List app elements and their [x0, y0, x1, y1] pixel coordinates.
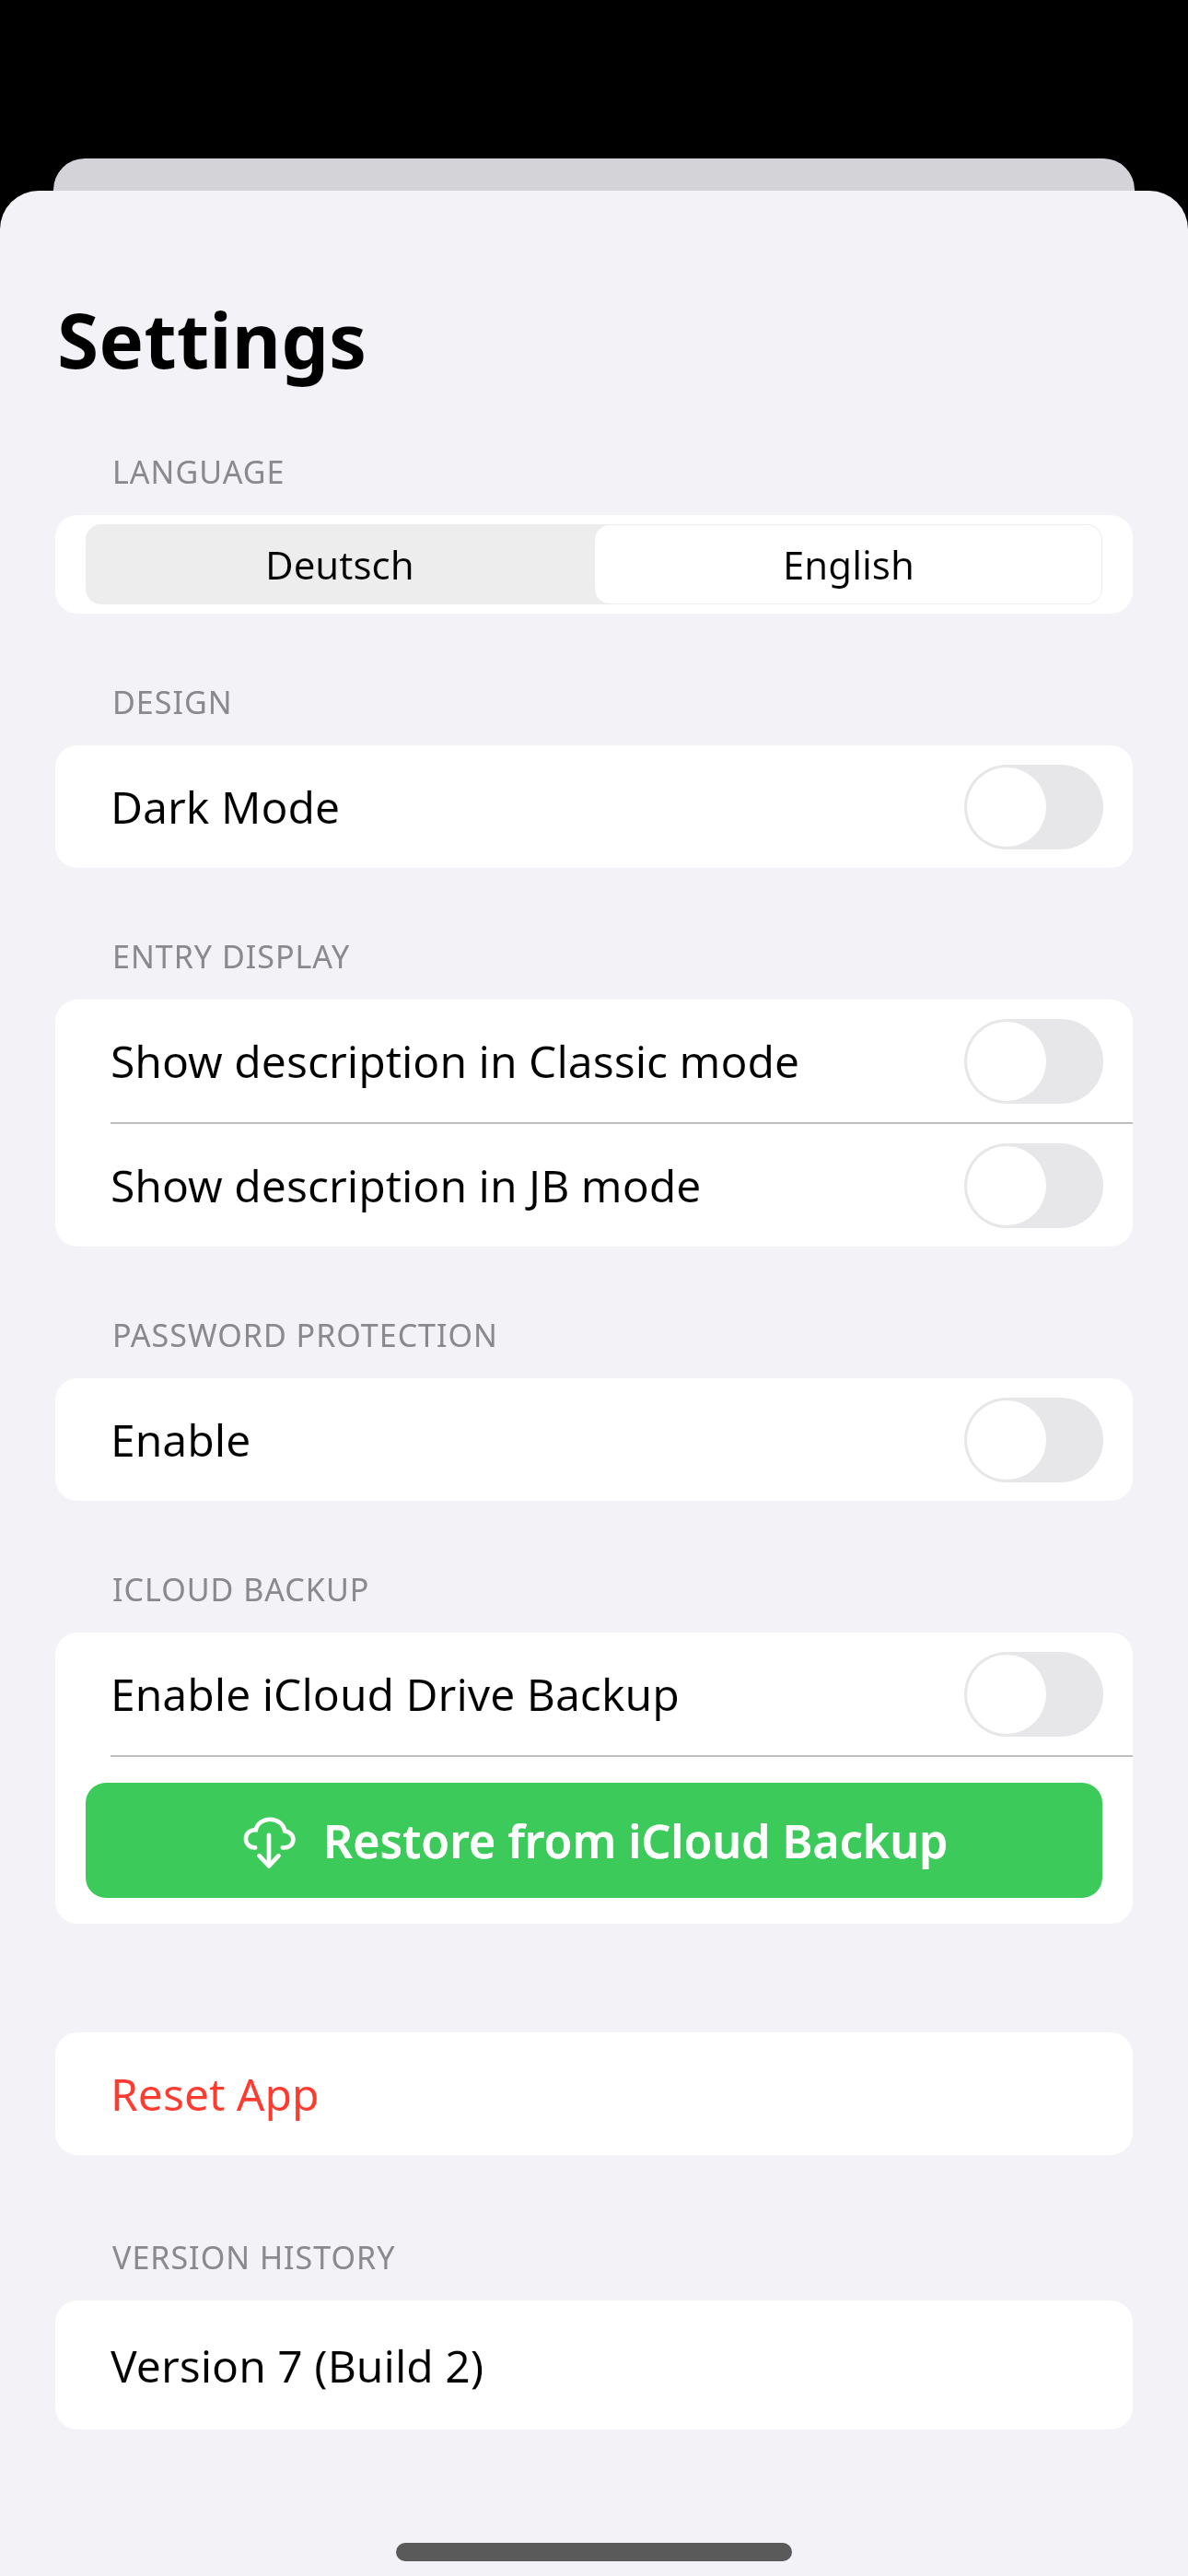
button[interactable]: Toggle	[964, 1019, 1103, 1104]
staticText: Settings	[57, 287, 367, 391]
staticText: PASSWORD PROTECTION	[112, 1314, 498, 1356]
staticText: Enable	[111, 1410, 964, 1469]
staticText: DESIGN	[112, 681, 233, 723]
staticText: Version 7 (Build 2)	[111, 2336, 484, 2395]
button[interactable]: Show description in Classic mode	[55, 1000, 1133, 1122]
button[interactable]: Dark Mode	[55, 745, 1133, 868]
staticText: ENTRY DISPLAY	[112, 935, 351, 978]
button[interactable]: Toggle	[964, 1398, 1103, 1482]
button[interactable]: Toggle	[964, 1652, 1103, 1737]
staticText: Restore from iCloud Backup	[323, 1809, 949, 1872]
button[interactable]: Restore from iCloud Backup	[86, 1783, 1102, 1898]
button[interactable]: Enable	[55, 1378, 1133, 1501]
staticText: VERSION HISTORY	[112, 2236, 396, 2278]
staticText: ICLOUD BACKUP	[112, 1568, 370, 1610]
button[interactable]: Toggle	[964, 765, 1103, 849]
staticText: Enable iCloud Drive Backup	[111, 1664, 964, 1724]
staticText: Deutsch	[265, 538, 414, 591]
staticText: Show description in JB mode	[111, 1155, 964, 1215]
staticText: Reset App	[111, 2064, 320, 2124]
staticText: LANGUAGE	[112, 451, 285, 493]
button[interactable]: Show description in JB mode	[55, 1124, 1133, 1247]
staticText: English	[783, 538, 914, 591]
button[interactable]: English	[595, 525, 1101, 603]
staticText: Show description in Classic mode	[111, 1031, 964, 1091]
button[interactable]: Enable iCloud Drive Backup	[55, 1633, 1133, 1755]
button[interactable]: Deutsch	[86, 524, 594, 604]
button[interactable]: Toggle	[964, 1143, 1103, 1228]
button[interactable]: Reset App	[55, 2032, 1133, 2155]
staticText: Dark Mode	[111, 777, 964, 837]
